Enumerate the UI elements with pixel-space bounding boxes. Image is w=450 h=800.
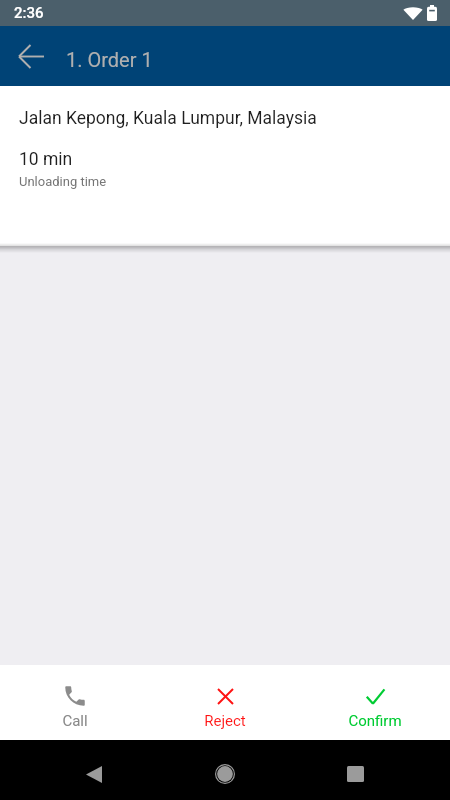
button[interactable]: Back	[70, 750, 118, 798]
button[interactable]: Home	[201, 750, 249, 798]
staticText: Call	[62, 712, 88, 730]
staticText: 1. Order 1	[66, 48, 153, 71]
staticText: 10 min	[19, 149, 73, 170]
staticText: Jalan Kepong, Kuala Lumpur, Malaysia	[19, 108, 317, 129]
button[interactable]: Call	[0, 665, 150, 740]
button[interactable]: Confirm	[300, 665, 450, 740]
staticText: Reject	[204, 712, 246, 730]
button[interactable]: Recent apps	[331, 750, 379, 798]
staticText: Unloading time	[19, 174, 107, 189]
button[interactable]: Reject	[150, 665, 300, 740]
staticText: Confirm	[348, 712, 402, 730]
staticText: 2:36	[14, 4, 44, 22]
button[interactable]: Navigate up	[0, 26, 62, 86]
